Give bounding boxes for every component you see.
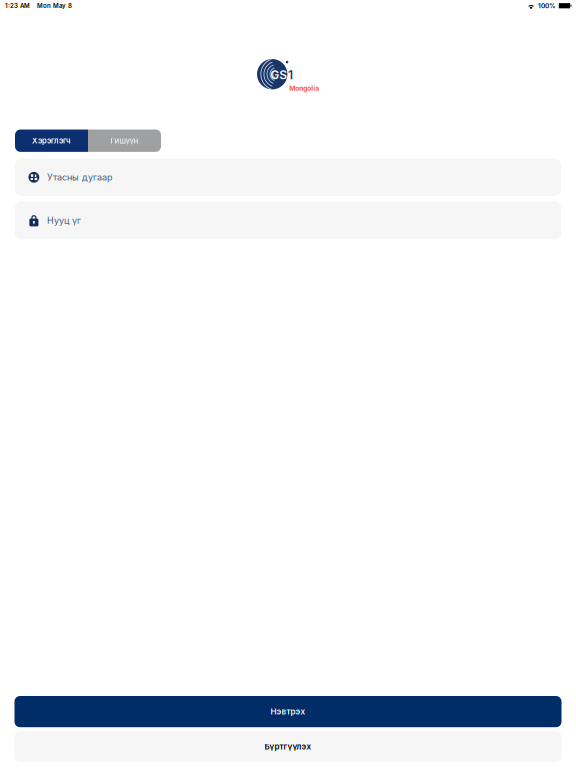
button[interactable]: Утасны дугаар <box>15 159 561 196</box>
staticText: Нэвтрэх <box>270 707 305 716</box>
staticText: Бүртгүүлэх <box>264 742 311 751</box>
staticText: 100% <box>538 2 556 10</box>
staticText: Хэрэглэгч <box>32 136 71 145</box>
staticText: Утасны дугаар <box>47 172 113 183</box>
staticText: Гишүүн <box>110 136 138 146</box>
staticText: Mongolia <box>289 84 319 92</box>
staticText: 1:23 AM <box>5 2 30 9</box>
staticText: 1 <box>288 68 293 82</box>
button[interactable]: Бүртгүүлэх <box>14 731 561 762</box>
button[interactable]: Нууц үг <box>15 202 561 239</box>
button[interactable]: Нэвтрэх <box>14 696 561 727</box>
staticText: Mon May 8 <box>37 2 72 9</box>
staticText: GS <box>270 68 287 82</box>
staticText: Нууц үг <box>47 215 81 226</box>
button[interactable]: Хэрэглэгч <box>15 129 88 152</box>
button[interactable]: Гишүүн <box>88 129 161 152</box>
